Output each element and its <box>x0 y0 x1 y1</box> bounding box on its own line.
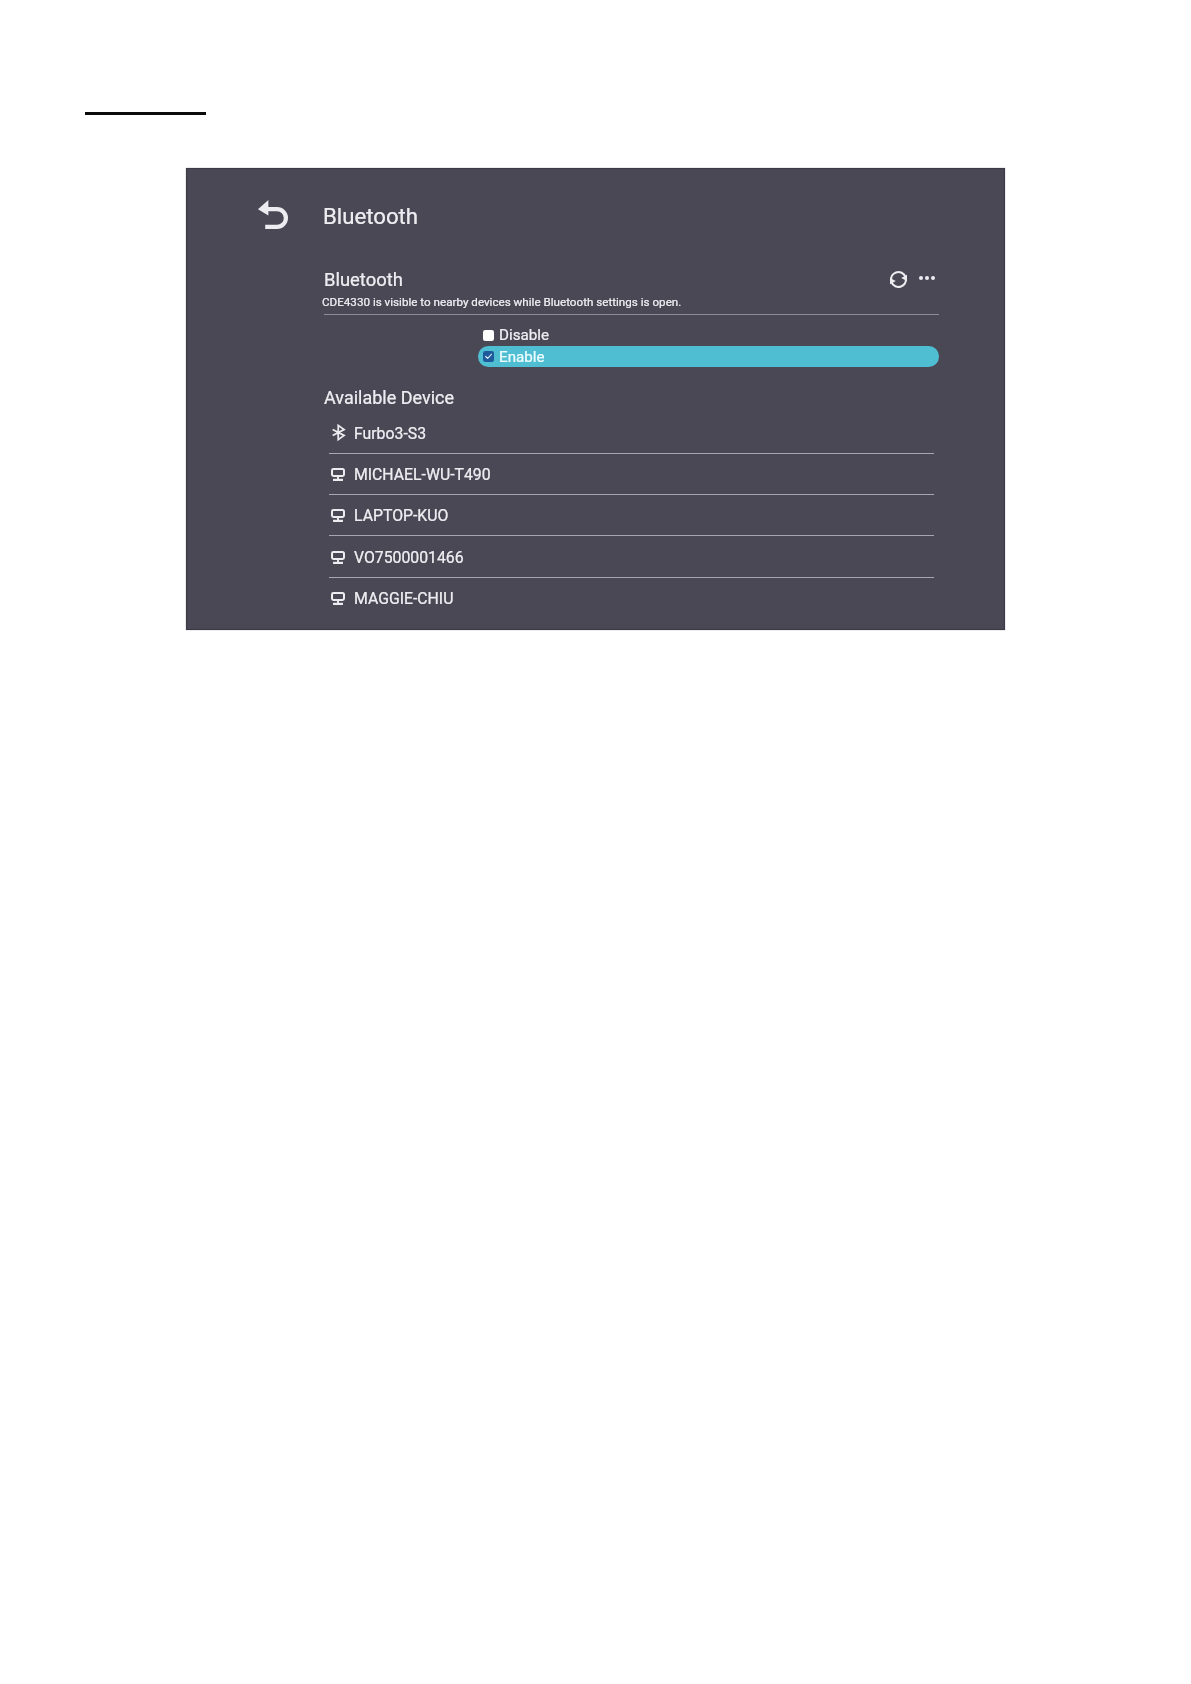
staticText: Disable <box>499 326 550 344</box>
staticText: Bluetooth <box>324 269 403 291</box>
staticText: Available Device <box>324 387 455 408</box>
button[interactable]: MAGGIE-CHIU <box>329 578 934 619</box>
staticText: Enable <box>499 348 545 366</box>
button[interactable]: Back <box>247 190 298 239</box>
staticText: VO7500001466 <box>354 548 464 567</box>
button[interactable]: Furbo3-S3 <box>329 413 934 454</box>
staticText: MAGGIE-CHIU <box>354 589 454 608</box>
button[interactable]: Disable <box>478 325 939 345</box>
staticText: Furbo3-S3 <box>354 424 427 443</box>
staticText: CDE4330 is visible to nearby devices whi… <box>322 295 682 309</box>
button[interactable]: VO7500001466 <box>329 537 934 578</box>
staticText: MICHAEL-WU-T490 <box>354 465 491 484</box>
staticText: Bluetooth <box>323 203 419 229</box>
button[interactable]: More options <box>913 264 941 292</box>
staticText: LAPTOP-KUO <box>354 506 449 525</box>
button[interactable]: Enable <box>478 346 939 367</box>
button[interactable]: MICHAEL-WU-T490 <box>329 454 934 495</box>
button[interactable]: LAPTOP-KUO <box>329 495 934 536</box>
button[interactable]: Refresh <box>884 265 912 293</box>
